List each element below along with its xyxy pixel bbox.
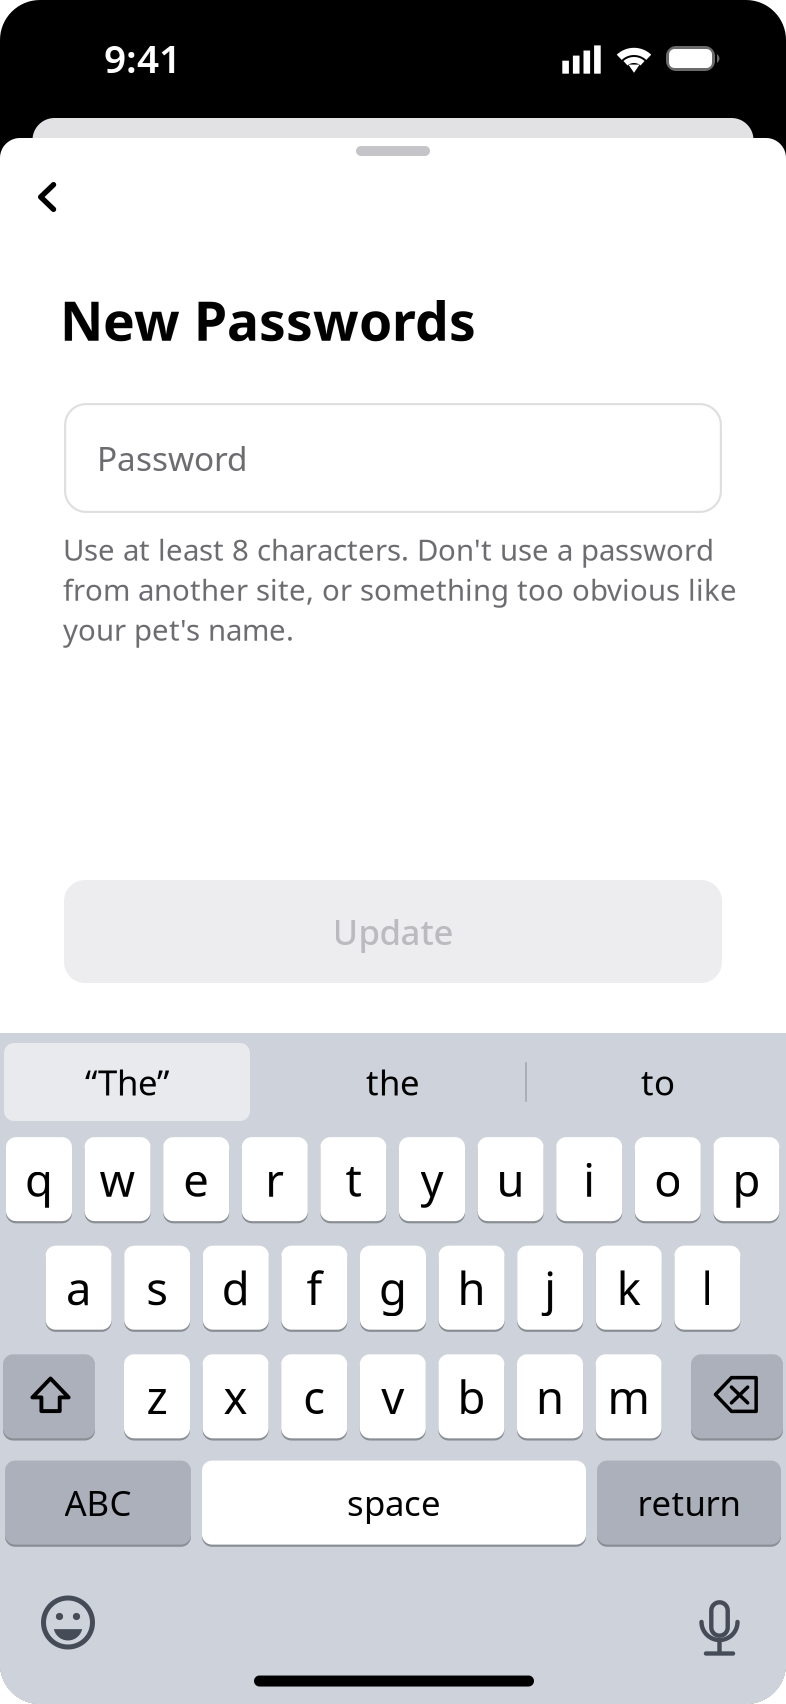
- staticText: l: [701, 1258, 713, 1318]
- staticText: Update: [332, 908, 453, 954]
- staticText: p: [732, 1149, 760, 1209]
- button[interactable]: l: [674, 1244, 740, 1331]
- button[interactable]: [691, 1353, 783, 1440]
- staticText: t: [345, 1149, 361, 1209]
- staticText: i: [583, 1149, 595, 1209]
- button[interactable]: f: [281, 1244, 347, 1331]
- staticText: a: [66, 1258, 91, 1318]
- button[interactable]: v: [360, 1353, 426, 1440]
- button[interactable]: r: [242, 1136, 308, 1223]
- button[interactable]: m: [596, 1353, 662, 1440]
- button[interactable]: n: [517, 1353, 583, 1440]
- staticText: m: [608, 1366, 650, 1426]
- button[interactable]: c: [281, 1353, 347, 1440]
- button[interactable]: x: [203, 1353, 269, 1440]
- staticText: c: [303, 1366, 325, 1426]
- button[interactable]: return: [597, 1459, 781, 1546]
- staticText: “The”: [85, 1059, 169, 1105]
- staticText: k: [617, 1258, 641, 1318]
- button[interactable]: p: [713, 1136, 779, 1223]
- button[interactable]: [3, 1353, 95, 1440]
- button[interactable]: t: [320, 1136, 386, 1223]
- button[interactable]: e: [163, 1136, 229, 1223]
- button[interactable]: space: [202, 1459, 586, 1546]
- staticText: q: [25, 1149, 53, 1209]
- button[interactable]: j: [517, 1244, 583, 1331]
- staticText: New Passwords: [60, 285, 476, 355]
- staticText: ABC: [64, 1480, 131, 1526]
- staticText: w: [100, 1149, 136, 1209]
- staticText: e: [183, 1149, 209, 1209]
- staticText: f: [306, 1258, 322, 1318]
- staticText: s: [146, 1258, 168, 1318]
- button[interactable]: [10, 160, 84, 234]
- staticText: return: [637, 1480, 740, 1526]
- staticText: v: [381, 1366, 404, 1426]
- staticText: o: [654, 1149, 681, 1209]
- button[interactable]: [23, 1577, 113, 1667]
- button[interactable]: s: [124, 1244, 190, 1331]
- button[interactable]: a: [46, 1244, 112, 1331]
- button[interactable]: h: [439, 1244, 505, 1331]
- staticText: to: [641, 1059, 675, 1105]
- button[interactable]: u: [478, 1136, 544, 1223]
- button[interactable]: Update: [64, 880, 722, 983]
- staticText: y: [420, 1149, 443, 1209]
- button[interactable]: the: [258, 1043, 528, 1121]
- staticText: h: [458, 1258, 486, 1318]
- staticText: the: [366, 1059, 420, 1105]
- button[interactable]: o: [635, 1136, 701, 1223]
- staticText: r: [265, 1149, 284, 1209]
- button[interactable]: k: [596, 1244, 662, 1331]
- staticText: Password: [97, 436, 248, 480]
- staticText: z: [146, 1366, 167, 1426]
- button[interactable]: [674, 1583, 764, 1673]
- staticText: d: [222, 1258, 250, 1318]
- button[interactable]: b: [438, 1353, 504, 1440]
- staticText: Use at least 8 characters. Don't use a p…: [63, 530, 737, 649]
- button[interactable]: q: [6, 1136, 72, 1223]
- button[interactable]: d: [203, 1244, 269, 1331]
- button[interactable]: to: [534, 1043, 782, 1121]
- button[interactable]: z: [124, 1353, 190, 1440]
- staticText: x: [224, 1366, 248, 1426]
- staticText: b: [457, 1366, 485, 1426]
- button[interactable]: w: [85, 1136, 151, 1223]
- button[interactable]: i: [556, 1136, 622, 1223]
- staticText: g: [379, 1258, 407, 1318]
- button[interactable]: Password: [64, 403, 722, 513]
- staticText: n: [536, 1366, 564, 1426]
- button[interactable]: y: [399, 1136, 465, 1223]
- staticText: u: [497, 1149, 525, 1209]
- staticText: space: [347, 1480, 441, 1526]
- button[interactable]: ABC: [5, 1459, 191, 1546]
- staticText: j: [544, 1258, 556, 1318]
- button[interactable]: g: [360, 1244, 426, 1331]
- button[interactable]: “The”: [4, 1043, 250, 1121]
- staticText: 9:41: [104, 32, 181, 84]
